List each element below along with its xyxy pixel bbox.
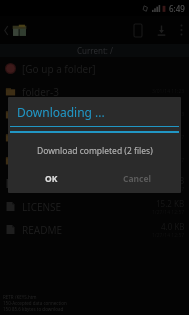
staticText: [Go up a folder] — [22, 62, 96, 76]
button[interactable]: new folder — [0, 103, 189, 126]
button[interactable]: OK — [8, 169, 94, 189]
button[interactable]: LICENSE — [0, 195, 189, 218]
staticText: 1/27/14 12:57 — [152, 157, 185, 164]
button[interactable]: folder-3 — [0, 80, 189, 103]
staticText: Download completed (2 files) — [37, 145, 153, 157]
staticText: folder-1 — [22, 131, 59, 145]
staticText: README — [22, 223, 63, 237]
staticText: 1/27/14 12:57 — [152, 186, 185, 193]
button[interactable]: README — [0, 218, 189, 241]
button[interactable]: Cancel — [94, 169, 181, 189]
staticText: Downloading ... — [17, 104, 105, 120]
staticText: new folder — [22, 108, 73, 122]
staticText: 15.2 KB — [156, 198, 185, 209]
staticText: Current: / — [77, 45, 113, 56]
staticText: 3/01/14 11:23 — [152, 111, 185, 118]
button[interactable]: Navigate up — [2, 19, 30, 42]
staticText: 6:49 — [169, 3, 185, 14]
button[interactable]: folder-2 — [0, 149, 189, 172]
button[interactable]: [Go up a folder] — [0, 57, 189, 80]
staticText: 1/27/14 12:57 — [152, 134, 185, 141]
staticText: 150 85.6 kbytes to download — [3, 306, 64, 312]
button[interactable]: Downloads — [149, 20, 174, 41]
button[interactable]: Device storage — [127, 19, 149, 42]
staticText: folder-3 — [22, 85, 59, 99]
staticText: 85.6 KB — [156, 175, 185, 186]
staticText: LICENSE — [22, 200, 62, 214]
staticText: 150-Accepted data connection — [3, 300, 67, 306]
button[interactable]: folder-1 — [0, 126, 189, 149]
button[interactable]: Current: / — [0, 44, 189, 57]
staticText: Cancel — [123, 173, 152, 185]
staticText: 4.0 KB — [161, 221, 185, 232]
staticText: OK — [45, 173, 58, 185]
staticText: RETR /KEYS.htm — [3, 294, 37, 300]
button[interactable]: KEYS — [0, 172, 189, 195]
